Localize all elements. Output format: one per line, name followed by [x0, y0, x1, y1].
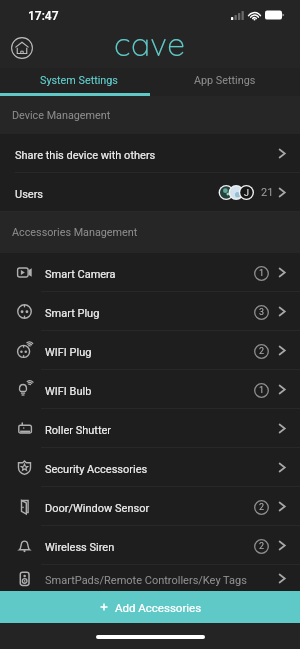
staticText: 21: [261, 186, 274, 199]
staticText: App Settings: [194, 74, 256, 87]
staticText: 3: [259, 307, 265, 318]
button[interactable]: WIFI Plug: [0, 331, 300, 370]
button[interactable]: System Settings: [0, 68, 150, 93]
staticText: cave: [114, 24, 186, 64]
staticText: 2: [259, 541, 265, 552]
staticText: Users: [15, 188, 44, 201]
staticText: Accessories Management: [12, 226, 138, 239]
staticText: Wireless Siren: [45, 541, 115, 554]
staticText: Smart Camera: [45, 268, 116, 281]
staticText: SmartPads/Remote Controllers/Key Tags: [45, 574, 247, 587]
staticText: 2: [259, 502, 265, 513]
staticText: WIFI Bulb: [45, 385, 92, 398]
staticText: Share this device with others: [15, 149, 156, 162]
staticText: Roller Shutter: [45, 424, 112, 437]
staticText: 17:47: [28, 9, 59, 23]
staticText: 1: [259, 385, 265, 396]
button[interactable]: WIFI Bulb: [0, 370, 300, 409]
staticText: 2: [259, 346, 265, 357]
staticText: J: [244, 188, 249, 199]
button[interactable]: Roller Shutter: [0, 409, 300, 448]
button[interactable]: Add Accessories: [0, 591, 300, 623]
staticText: System Settings: [40, 74, 118, 87]
button[interactable]: SmartPads/Remote Controllers/Key Tags: [0, 565, 300, 591]
button[interactable]: Smart Camera: [0, 253, 300, 292]
button[interactable]: Door/Window Sensor: [0, 487, 300, 526]
button[interactable]: App Settings: [150, 68, 300, 93]
staticText: WIFI Plug: [45, 346, 92, 359]
button[interactable]: Share this device with others: [0, 134, 300, 173]
staticText: Device Management: [12, 109, 111, 122]
button[interactable]: Home: [10, 35, 34, 59]
button[interactable]: Smart Plug: [0, 292, 300, 331]
staticText: Door/Window Sensor: [45, 502, 150, 515]
staticText: Security Accessories: [45, 463, 148, 476]
staticText: 1: [259, 268, 265, 279]
staticText: Add Accessories: [115, 601, 202, 614]
button[interactable]: Users: [0, 173, 300, 212]
button[interactable]: Security Accessories: [0, 448, 300, 487]
button[interactable]: Wireless Siren: [0, 526, 300, 565]
staticText: Smart Plug: [45, 307, 100, 320]
